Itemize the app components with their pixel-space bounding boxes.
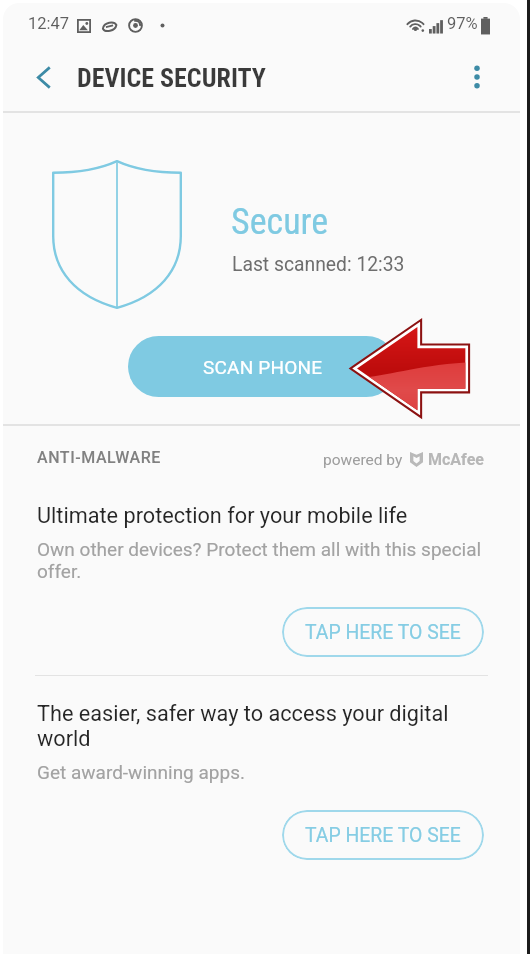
staticText: TAP HERE TO SEE (305, 621, 461, 644)
button[interactable]: More options (454, 53, 500, 99)
staticText: SCAN PHONE (203, 356, 323, 378)
staticText: 12:47 (28, 14, 70, 33)
button[interactable]: Back (21, 54, 67, 100)
staticText: The easier, safer way to access your dig… (37, 701, 497, 751)
staticText: powered by (323, 451, 403, 469)
staticText: Secure (231, 201, 329, 243)
staticText: ANTI-MALWARE (37, 448, 161, 467)
staticText: TAP HERE TO SEE (305, 824, 461, 847)
button[interactable]: TAP HERE TO SEE (282, 810, 484, 860)
button[interactable]: SCAN PHONE (128, 336, 397, 397)
staticText: Own other devices? Protect them all with… (37, 538, 497, 582)
staticText: Get award-winning apps. (37, 761, 497, 783)
staticText: Ultimate protection for your mobile life (37, 503, 497, 528)
staticText: 97% (447, 14, 478, 33)
staticText: Last scanned: 12:33 (232, 253, 405, 276)
button[interactable]: TAP HERE TO SEE (282, 607, 484, 657)
staticText: DEVICE SECURITY (77, 63, 266, 93)
staticText: McAfee (428, 450, 484, 469)
